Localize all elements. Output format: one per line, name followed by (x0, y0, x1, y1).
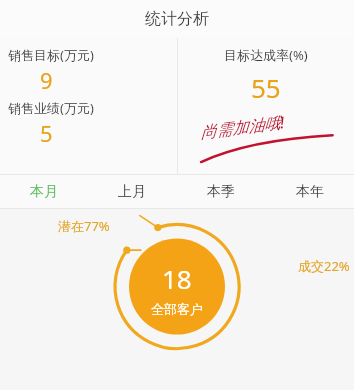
button[interactable]: 本月 (0, 175, 88, 209)
staticText: 目标达成率(%) (224, 46, 308, 64)
button[interactable]: 客户构成环形图 (0, 209, 354, 390)
staticText: 成交22% (298, 257, 350, 275)
staticText: 5 (40, 118, 53, 148)
staticText: 本月 (30, 183, 58, 201)
staticText: 上月 (118, 183, 146, 201)
staticText: 9 (40, 65, 53, 95)
staticText: 18 (162, 261, 192, 296)
staticText: 尚需加油哦! (199, 111, 286, 143)
staticText: 销售目标(万元) (8, 46, 94, 64)
staticText: 全部客户 (151, 301, 203, 317)
staticText: 销售业绩(万元) (8, 99, 94, 117)
button[interactable]: 本年 (265, 175, 354, 209)
staticText: 55 (251, 70, 281, 105)
staticText: 统计分析 (145, 9, 209, 29)
staticText: 潜在77% (58, 217, 110, 235)
staticText: 本年 (296, 183, 324, 201)
button[interactable]: 上月 (88, 175, 176, 209)
staticText: 本季 (207, 183, 235, 201)
button[interactable]: 本季 (176, 175, 265, 209)
